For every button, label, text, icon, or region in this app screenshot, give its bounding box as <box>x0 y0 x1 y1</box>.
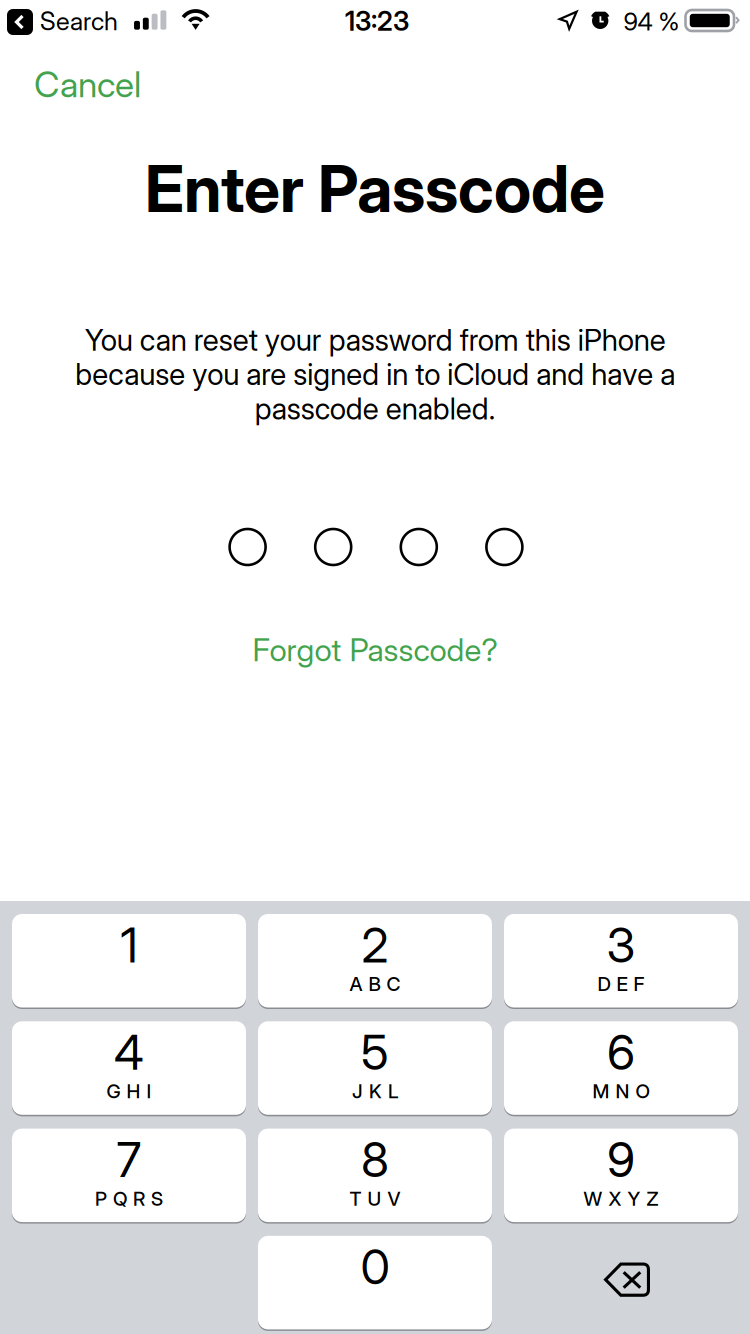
button[interactable]: 1 <box>12 914 246 1007</box>
staticText: 13:23 <box>345 5 409 37</box>
staticText: 4 <box>114 1023 144 1081</box>
staticText: 0 <box>360 1238 389 1296</box>
staticText: 2 <box>361 916 388 974</box>
button[interactable]: 5 <box>258 1021 492 1115</box>
staticText: You can reset your password from this iP… <box>75 322 675 427</box>
staticText: DEF <box>597 972 644 996</box>
staticText: Search <box>40 6 118 36</box>
staticText: Cancel <box>34 63 141 106</box>
staticText: 6 <box>607 1023 635 1081</box>
staticText: WXYZ <box>583 1187 658 1210</box>
button[interactable]: 3 <box>504 914 738 1007</box>
button[interactable]: 6 <box>504 1021 738 1115</box>
staticText: JKL <box>352 1080 398 1103</box>
staticText: GHI <box>106 1080 151 1103</box>
staticText: Enter Passcode <box>145 150 605 227</box>
staticText: 94 % <box>623 7 679 36</box>
staticText: 1 <box>120 916 137 974</box>
button[interactable]: Delete <box>504 1236 738 1329</box>
staticText: ABC <box>349 972 400 996</box>
button[interactable]: 2 <box>258 914 492 1007</box>
staticText: 8 <box>361 1131 389 1189</box>
button[interactable]: Forgot Passcode? <box>240 619 509 681</box>
button[interactable]: 0 <box>258 1236 492 1329</box>
button[interactable]: 8 <box>258 1129 492 1222</box>
staticText: 5 <box>361 1023 389 1081</box>
button[interactable]: 7 <box>12 1129 246 1222</box>
staticText: PQRS <box>95 1187 163 1210</box>
staticText: Forgot Passcode? <box>252 631 497 669</box>
staticText: 9 <box>607 1131 635 1189</box>
staticText: 3 <box>606 916 635 974</box>
button[interactable]: 9 <box>504 1129 738 1222</box>
button[interactable]: 4 <box>12 1021 246 1115</box>
staticText: TUV <box>349 1187 400 1210</box>
staticText: MNO <box>592 1080 649 1103</box>
staticText: 7 <box>116 1131 141 1189</box>
button[interactable]: Cancel <box>0 53 159 116</box>
